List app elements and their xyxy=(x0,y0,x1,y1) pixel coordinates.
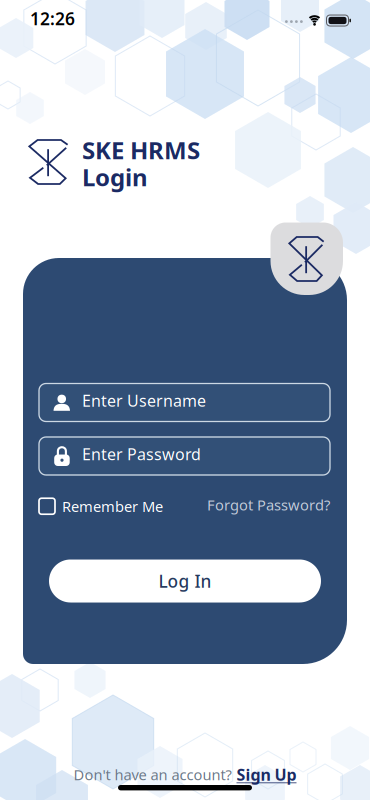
staticText: Log In xyxy=(158,569,211,592)
button[interactable]: Remember Me xyxy=(39,496,163,516)
staticText: Enter Username xyxy=(82,390,206,411)
staticText: Sign Up xyxy=(236,764,296,785)
staticText: Remember Me xyxy=(62,496,163,516)
staticText: Forgot Password? xyxy=(207,495,330,514)
button[interactable]: Enter Username xyxy=(39,383,330,421)
staticText: Don't have an account? xyxy=(73,765,231,784)
button[interactable]: Forgot Password? xyxy=(207,495,330,514)
button[interactable]: Log In xyxy=(49,559,321,602)
staticText: Enter Password xyxy=(82,443,201,465)
staticText: Login xyxy=(82,161,148,193)
button[interactable]: Sign Up xyxy=(236,764,296,785)
staticText: 12:26 xyxy=(30,7,75,30)
staticText: SKE HRMS xyxy=(82,134,200,166)
button[interactable]: Enter Password xyxy=(39,437,330,475)
